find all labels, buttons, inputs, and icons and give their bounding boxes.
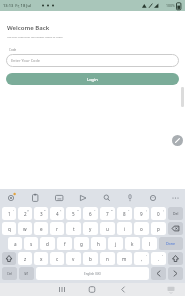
staticText: * [128,208,130,211]
button[interactable]: , [134,252,149,265]
staticText: Del [173,211,179,216]
button[interactable]: 9 [134,207,149,220]
staticText: q [8,226,11,232]
button[interactable]: o [134,222,149,235]
staticText: Done [166,241,176,246]
button[interactable]: 7 [100,207,115,220]
staticText: e [40,226,43,232]
staticText: l [149,241,151,247]
staticText: o [140,226,143,232]
staticText: 3 [40,211,43,217]
staticText: n [106,256,109,262]
button[interactable]: d [40,237,55,250]
staticText: 13:13 Fr, 18 Jul [3,3,31,8]
button[interactable]: l [142,237,157,250]
button[interactable] [168,252,183,265]
button[interactable]: 5 [66,207,81,220]
staticText: x [40,256,43,262]
staticText: 5 [72,211,75,217]
button[interactable]: k [125,237,140,250]
button[interactable]: e [34,222,48,235]
button[interactable]: a [8,237,22,250]
button[interactable]: j [108,237,123,250]
staticText: ( [146,208,147,211]
staticText: w [23,226,27,232]
button[interactable]: English (UK) [36,267,149,280]
button[interactable]: x [34,252,48,265]
staticText: % [77,208,79,211]
staticText: m [122,256,127,262]
button[interactable]: i [117,222,132,235]
staticText: # [44,208,46,211]
staticText: Enter Your Code [11,58,40,63]
button[interactable]: r [50,222,64,235]
button[interactable]: g [74,237,89,250]
button[interactable]: 1 [0,189,185,283]
staticText: Ctrl [7,272,12,276]
button[interactable]: y [83,222,98,235]
button[interactable]: 0 [151,207,166,220]
button[interactable]: s [24,237,38,250]
button[interactable] [2,252,16,265]
staticText: v [72,256,75,262]
staticText: ^ [94,208,96,211]
staticText: f [64,241,66,247]
staticText: English (UK) [84,272,101,276]
staticText: i [124,226,126,232]
button[interactable]: Ctrl [2,267,17,280]
staticText: 1 [8,211,11,217]
button[interactable]: f [57,237,72,250]
staticText: ! [146,253,147,256]
button[interactable]: c [50,252,64,265]
button[interactable]: z [18,252,32,265]
button[interactable] [168,222,183,235]
button[interactable]: q [2,222,16,235]
staticText: j [115,241,117,247]
button[interactable]: Enter Your Code [6,54,179,67]
button[interactable]: Del [168,207,183,220]
button[interactable]: u [100,222,115,235]
button[interactable]: Done [159,237,183,250]
button[interactable] [0,283,185,296]
staticText: h [97,241,100,247]
staticText: Login [87,77,98,82]
staticText: s [30,241,33,247]
button[interactable]: h [91,237,106,250]
button[interactable]: b [83,252,98,265]
button[interactable]: p [151,222,166,235]
staticText: 100% [166,3,175,8]
staticText: u [106,226,109,232]
button[interactable]: m [117,252,132,265]
staticText: Use your code from the Shopify Admin to … [7,35,63,38]
staticText: c [56,256,59,262]
staticText: 0 [157,211,160,217]
staticText: Welcome Back [7,24,50,32]
button[interactable] [168,267,183,280]
staticText: @ [27,208,30,211]
button[interactable]: v [66,252,81,265]
button[interactable]: !#1 [19,267,34,280]
button[interactable]: 8 [117,207,132,220]
button[interactable]: 6 [83,207,98,220]
staticText: $ [60,208,62,211]
staticText: r [56,226,58,232]
button[interactable]: 2 [18,207,32,220]
button[interactable]: 1 [2,207,16,220]
staticText: t [73,226,75,232]
staticText: , [141,256,143,262]
button[interactable]: w [18,222,32,235]
button[interactable] [151,267,166,280]
button[interactable]: t [66,222,81,235]
staticText: 7 [106,211,109,217]
button[interactable] [172,135,183,146]
button[interactable]: . [151,252,166,265]
button[interactable]: Login [6,73,179,85]
button[interactable]: 3 [34,207,48,220]
staticText: 8 [123,211,126,217]
staticText: & [111,208,113,211]
button[interactable]: n [100,252,115,265]
staticText: Code [9,48,17,52]
staticText: y [89,226,92,232]
staticText: k [131,241,134,247]
button[interactable]: 4 [50,207,64,220]
